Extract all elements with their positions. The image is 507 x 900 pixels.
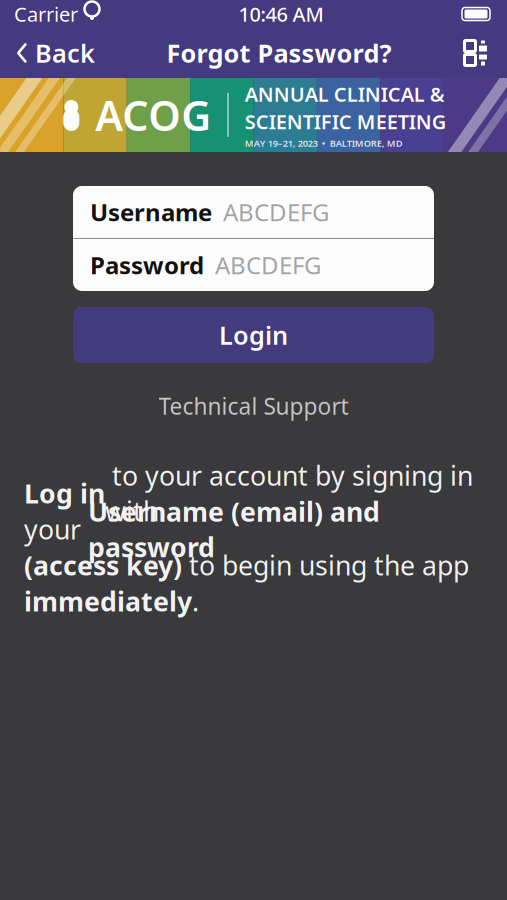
staticText: Password (90, 249, 204, 281)
staticText: ABCDEFG (215, 249, 321, 281)
staticText: Username (90, 196, 212, 228)
staticText: Technical Support (158, 391, 348, 421)
staticText: ANNUAL CLINICAL & (245, 81, 445, 107)
button[interactable]: Login (0, 291, 507, 363)
button[interactable]: Back (0, 28, 105, 78)
staticText: Forgot Password? (166, 36, 391, 70)
staticText: Carrier (14, 1, 78, 27)
button[interactable]: Technical Support (118, 363, 388, 429)
staticText: Login (219, 318, 288, 352)
staticText: Back (35, 36, 95, 70)
staticText: to your account by signing in with (105, 458, 473, 528)
staticText: ACOG (95, 88, 211, 142)
staticText: . (192, 583, 199, 619)
staticText: ABCDEFG (223, 196, 329, 228)
staticText: MAY 19–21, 2023 • BALTIMORE, MD (245, 137, 403, 149)
staticText: Log in (24, 475, 105, 511)
staticText: to begin using the app (182, 547, 469, 583)
button[interactable]: Username (0, 152, 507, 291)
staticText: your (24, 511, 88, 547)
staticText: Username (email) and password (88, 494, 380, 564)
staticText: 10:46 AM (238, 1, 323, 27)
staticText: immediately (24, 583, 192, 619)
button[interactable]: Scan QR code (453, 28, 507, 78)
staticText: SCIENTIFIC MEETING (245, 108, 447, 135)
staticText: (access key) (24, 547, 182, 583)
